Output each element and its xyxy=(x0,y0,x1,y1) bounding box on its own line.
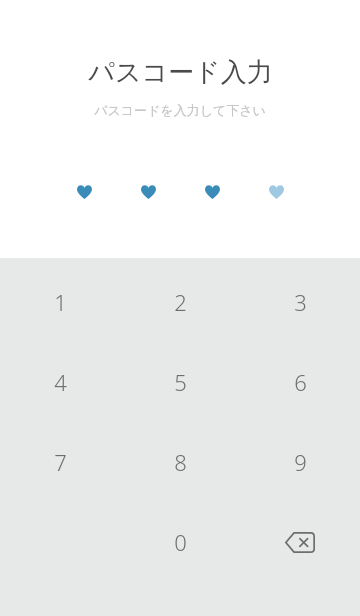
staticText: パスコードを入力して下さい xyxy=(94,102,266,118)
button[interactable]: 7 xyxy=(0,422,120,502)
button[interactable]: 4 xyxy=(0,342,120,422)
staticText: 6 xyxy=(294,367,307,397)
button[interactable]: 3 xyxy=(240,262,360,342)
staticText: パスコード入力 xyxy=(88,56,273,89)
staticText: 1 xyxy=(54,287,67,317)
button[interactable]: 8 xyxy=(120,422,240,502)
staticText: 0 xyxy=(174,527,187,557)
button[interactable]: 9 xyxy=(240,422,360,502)
staticText: 9 xyxy=(294,447,307,477)
staticText: 8 xyxy=(174,447,187,477)
staticText: 7 xyxy=(54,447,67,477)
button[interactable]: 6 xyxy=(240,342,360,422)
button[interactable]: 5 xyxy=(120,342,240,422)
staticText: 2 xyxy=(174,287,187,317)
button[interactable]: Backspace xyxy=(240,502,360,582)
button[interactable]: 0 xyxy=(120,502,240,582)
button[interactable]: 1 xyxy=(0,262,120,342)
staticText: 3 xyxy=(294,287,307,317)
staticText: 4 xyxy=(54,367,67,397)
button[interactable]: 2 xyxy=(120,262,240,342)
staticText: 5 xyxy=(174,367,187,397)
